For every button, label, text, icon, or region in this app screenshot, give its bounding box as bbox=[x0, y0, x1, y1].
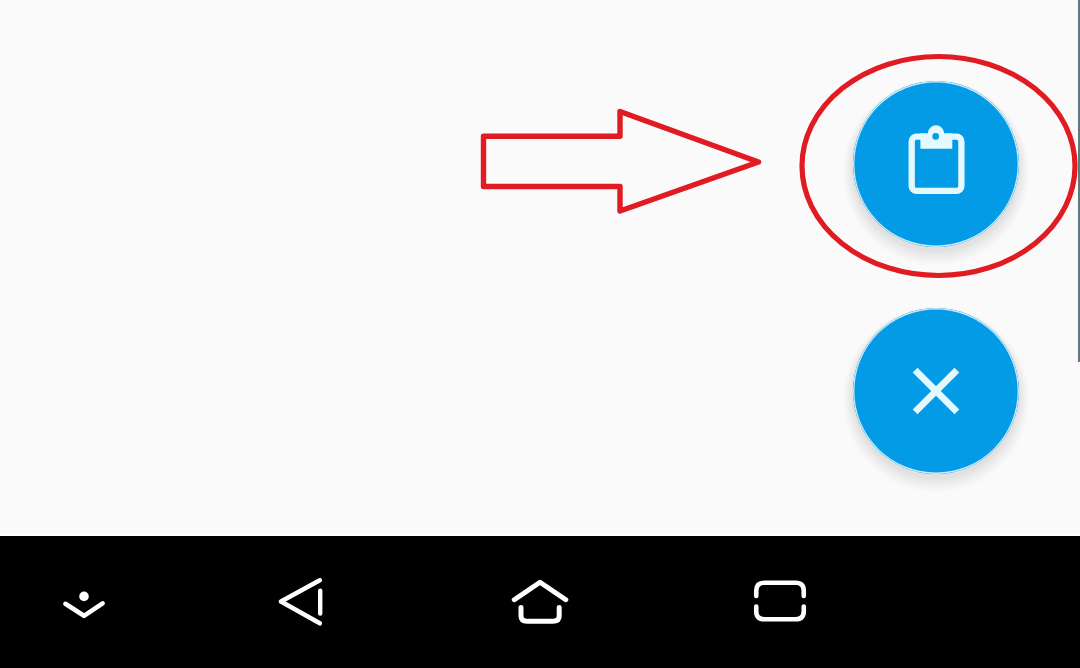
button[interactable]: Close bbox=[853, 308, 1019, 474]
button[interactable]: Back bbox=[252, 553, 348, 649]
button[interactable]: Recents bbox=[732, 553, 828, 649]
button[interactable]: Hide keyboard bbox=[36, 553, 132, 649]
button[interactable]: Copy to clipboard bbox=[853, 81, 1019, 247]
button[interactable]: Home bbox=[492, 553, 588, 649]
